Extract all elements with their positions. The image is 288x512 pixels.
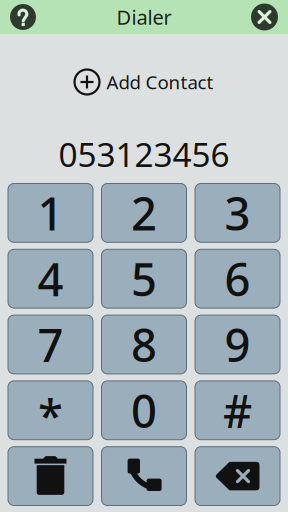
staticText: 2 (131, 183, 157, 243)
button[interactable]: Add Contact (0, 64, 288, 100)
button[interactable]: Delete all (8, 447, 93, 505)
button[interactable]: Backspace (195, 447, 280, 505)
button[interactable]: 9 (195, 315, 280, 374)
button[interactable]: Help (10, 4, 36, 30)
staticText: Dialer (116, 4, 171, 30)
button[interactable]: 7 (8, 315, 93, 374)
button[interactable]: 5 (101, 249, 186, 308)
button[interactable]: 0 (101, 381, 186, 440)
button[interactable]: 2 (101, 183, 186, 242)
button[interactable]: 4 (8, 249, 93, 308)
staticText: 0 (131, 380, 157, 440)
button[interactable]: * (8, 381, 93, 440)
button[interactable]: # (195, 381, 280, 440)
button[interactable]: 8 (101, 315, 186, 374)
staticText: 8 (131, 314, 157, 375)
staticText: 053123456 (58, 132, 229, 176)
staticText: 4 (37, 249, 63, 309)
button[interactable]: 3 (195, 183, 280, 242)
staticText: * (38, 384, 63, 444)
staticText: 1 (37, 183, 63, 243)
staticText: 7 (37, 314, 63, 375)
button[interactable]: Close (251, 3, 278, 30)
button[interactable]: 6 (195, 249, 280, 308)
staticText: # (223, 380, 252, 440)
staticText: Add Contact (106, 70, 213, 94)
staticText: 9 (224, 314, 250, 375)
staticText: 5 (131, 249, 157, 309)
button[interactable]: 1 (8, 183, 93, 242)
staticText: 6 (224, 249, 250, 309)
staticText: 3 (224, 183, 250, 243)
button[interactable]: Call (101, 447, 186, 505)
